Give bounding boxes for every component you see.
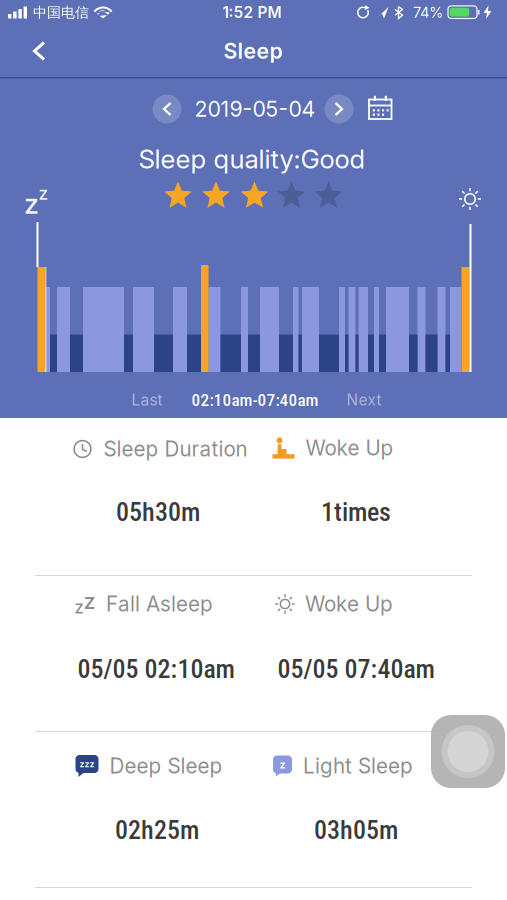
staticText: Woke Up [305, 433, 393, 463]
staticText: Fall Asleep [106, 589, 213, 619]
staticText: 1times [321, 494, 391, 530]
staticText: z [83, 585, 95, 617]
staticText: 03h05m [314, 812, 398, 848]
staticText: z [38, 181, 48, 206]
staticText: Woke Up [305, 589, 393, 619]
staticText: Sleep Duration [103, 434, 247, 464]
staticText: 1:52 PM [222, 1, 281, 24]
staticText: 05h30m [116, 494, 200, 530]
staticText: Sleep quality:Good [138, 140, 365, 178]
staticText: Next [346, 389, 381, 411]
staticText: 中国电信 [33, 2, 89, 23]
staticText: 05/05 07:40am [277, 651, 434, 687]
staticText: Light Sleep [303, 751, 413, 781]
staticText: 02:10am-07:40am [191, 388, 318, 412]
staticText: zzz [79, 758, 94, 770]
staticText: 05/05 02:10am [77, 651, 234, 687]
staticText: z [74, 595, 83, 619]
staticText: 02h25m [115, 812, 199, 848]
staticText: 2019-05-04 [194, 94, 315, 124]
staticText: 74% [413, 2, 443, 23]
staticText: Sleep [223, 36, 282, 66]
staticText: Last [131, 389, 162, 411]
staticText: z [279, 757, 285, 772]
staticText: z [24, 183, 39, 224]
staticText: Deep Sleep [109, 751, 222, 781]
